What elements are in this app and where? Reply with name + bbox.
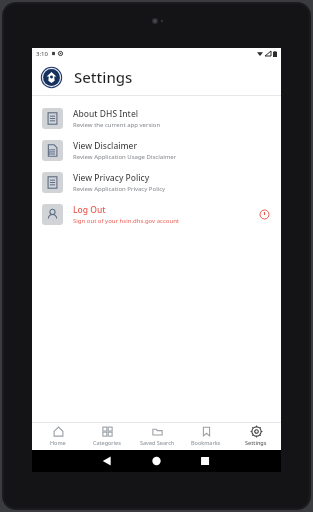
- button[interactable]: Bookmarks: [182, 422, 230, 450]
- staticText: Bookmarks: [191, 439, 221, 446]
- staticText: Review Application Usage Disclaimer: [73, 153, 177, 161]
- staticText: Settings: [245, 439, 267, 446]
- button[interactable]: Settings: [232, 422, 280, 450]
- staticText: Review Application Privacy Policy: [73, 185, 166, 193]
- button[interactable]: About DHS Intel: [32, 102, 281, 134]
- button[interactable]: View Privacy Policy: [32, 166, 281, 198]
- button[interactable]: Categories: [83, 422, 131, 450]
- staticText: Sign out of your hsin.dhs.gov account: [73, 217, 180, 225]
- button[interactable]: Log Out: [32, 198, 281, 230]
- staticText: View Privacy Policy: [73, 172, 150, 184]
- staticText: Home: [50, 439, 66, 446]
- button[interactable]: Home: [34, 422, 82, 450]
- staticText: Saved Search: [140, 439, 175, 446]
- button[interactable]: Saved Search: [133, 422, 181, 450]
- staticText: About DHS Intel: [73, 108, 139, 120]
- button[interactable]: View Disclaimer: [32, 134, 281, 166]
- staticText: Settings: [74, 67, 133, 87]
- staticText: Categories: [93, 439, 121, 446]
- staticText: View Disclaimer: [73, 140, 138, 152]
- button[interactable]: Log out: [257, 207, 271, 221]
- staticText: Review the current app version: [73, 121, 161, 129]
- staticText: Log Out: [73, 204, 106, 216]
- staticText: 3:10: [36, 50, 48, 58]
